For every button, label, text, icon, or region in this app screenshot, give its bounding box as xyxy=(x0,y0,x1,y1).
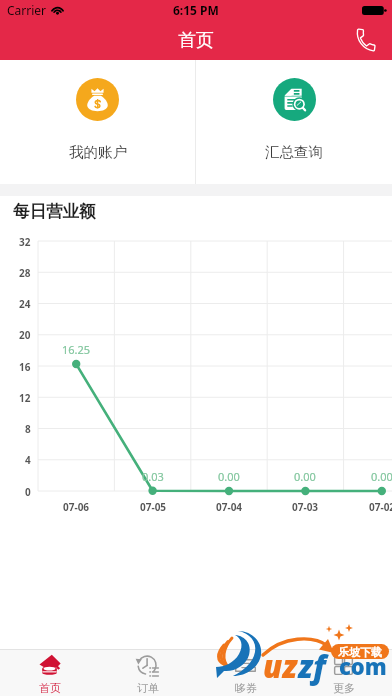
staticText: 首页 xyxy=(39,681,61,695)
staticText: 哆券 xyxy=(235,681,257,695)
staticText: 16 xyxy=(19,360,31,374)
staticText: 4 xyxy=(25,453,31,467)
staticText: 0 xyxy=(25,485,31,499)
staticText: 每日营业额 xyxy=(13,201,96,222)
button[interactable]: 我的账户 xyxy=(0,60,195,184)
button[interactable]: 订单 xyxy=(98,650,196,696)
staticText: 乐坡下载 xyxy=(338,645,382,659)
staticText: 订单 xyxy=(137,681,159,695)
staticText: 24 xyxy=(19,297,31,311)
button[interactable]: 哆券 xyxy=(196,650,294,696)
staticText: 更多 xyxy=(333,681,355,695)
staticText: 8 xyxy=(25,422,31,436)
staticText: 我的账户 xyxy=(69,143,127,161)
staticText: 20 xyxy=(19,328,31,342)
staticText: com xyxy=(339,651,387,681)
staticText: Carrier xyxy=(7,2,47,18)
staticText: uz xyxy=(263,645,298,687)
button[interactable]: 首页 xyxy=(0,650,98,696)
staticText: 0.03 xyxy=(142,469,164,484)
staticText: 32 xyxy=(19,235,31,249)
staticText: 12 xyxy=(19,391,31,405)
button[interactable]: 汇总查询 xyxy=(196,60,392,184)
staticText: 6:15 PM xyxy=(173,2,219,18)
staticText: 16.25 xyxy=(62,342,91,357)
staticText: 07-02 xyxy=(369,500,392,514)
button[interactable]: 更多 xyxy=(294,650,392,696)
staticText: 0.00 xyxy=(371,469,392,484)
button[interactable]: Call xyxy=(346,20,386,60)
staticText: 汇总查询 xyxy=(265,143,323,161)
staticText: 0.00 xyxy=(218,469,240,484)
staticText: 28 xyxy=(19,266,31,280)
staticText: 07-05 xyxy=(140,500,167,514)
staticText: 07-04 xyxy=(216,500,243,514)
staticText: zf xyxy=(298,645,326,687)
staticText: 07-06 xyxy=(63,500,90,514)
staticText: 07-03 xyxy=(292,500,319,514)
staticText: 0.00 xyxy=(294,469,316,484)
staticText: 首页 xyxy=(178,29,214,52)
